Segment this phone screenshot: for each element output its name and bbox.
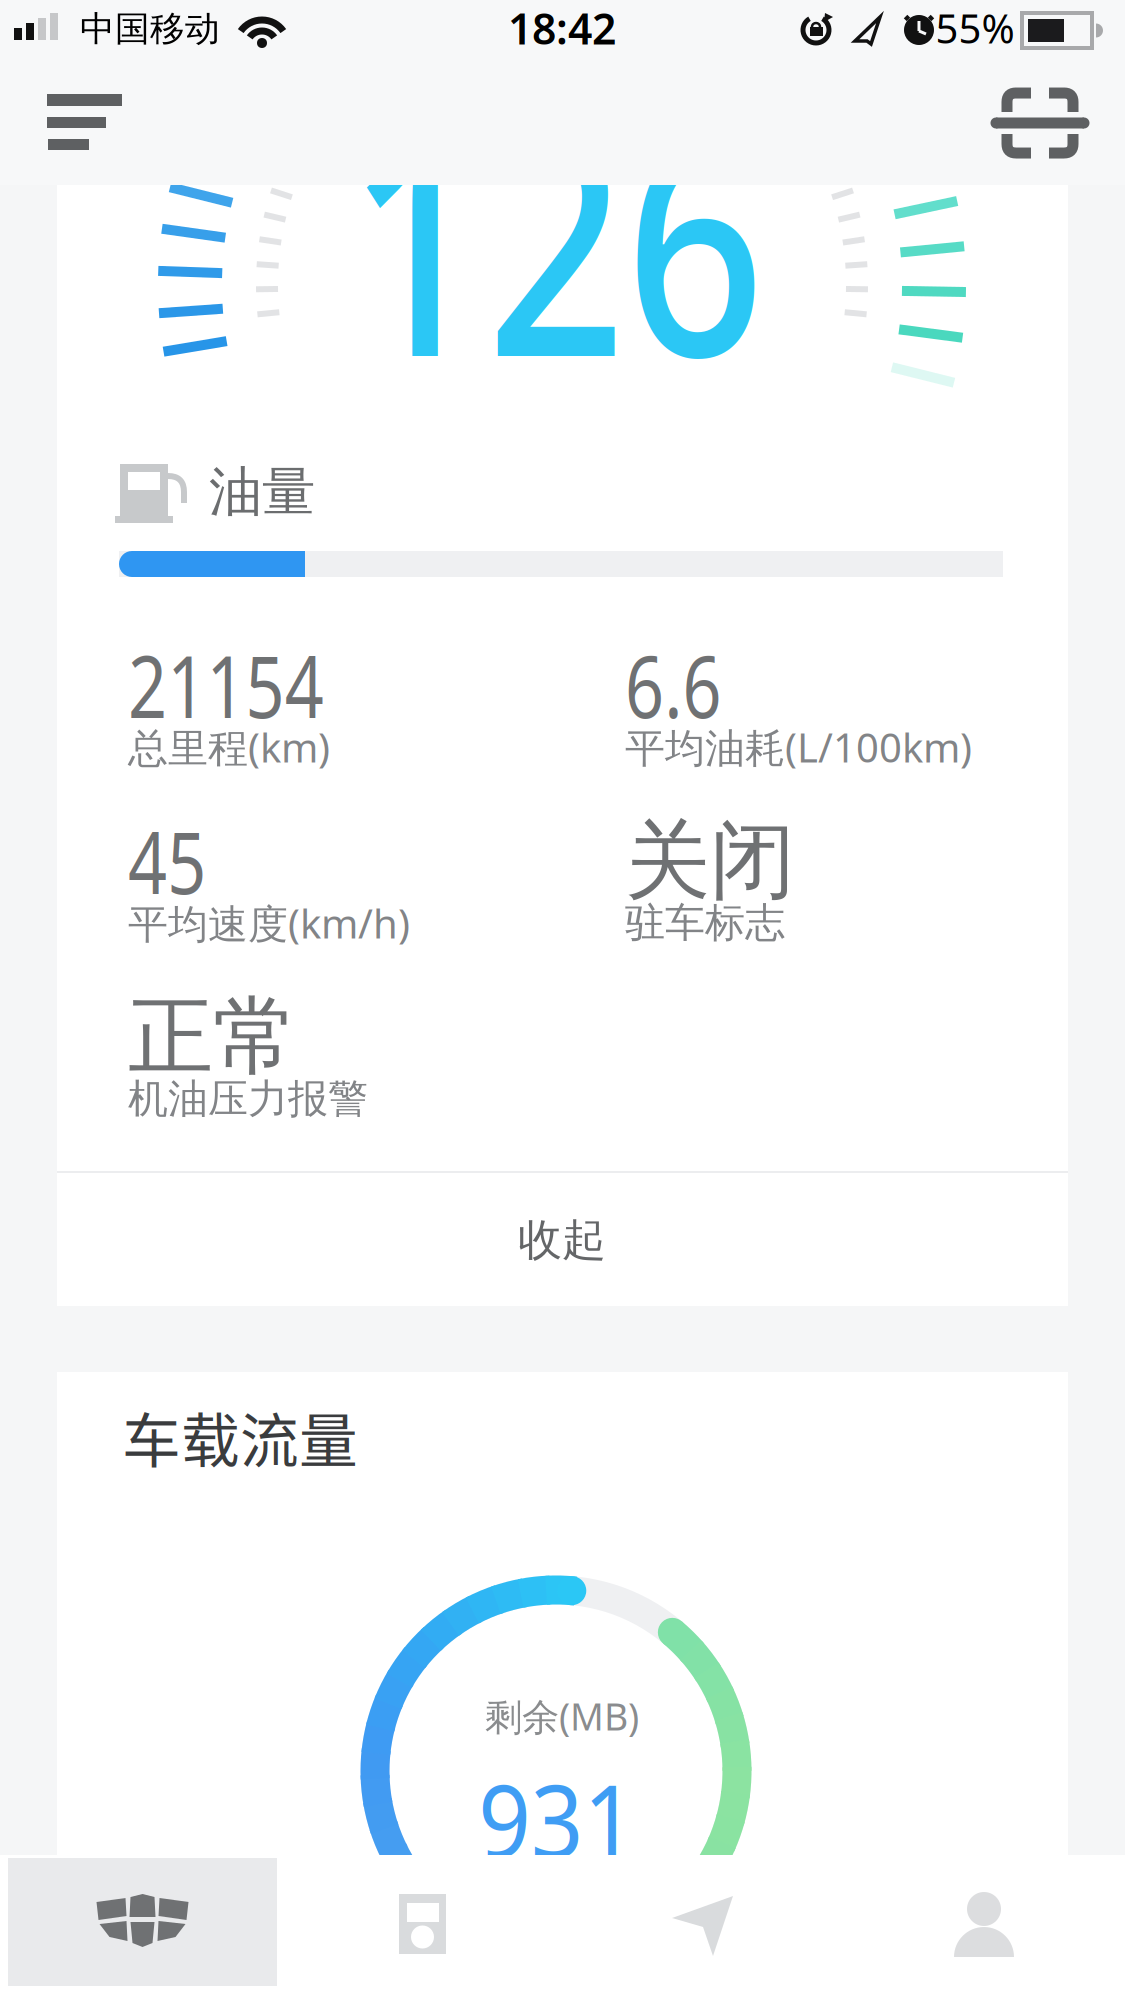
- staticText: 平均速度(km/h): [128, 896, 410, 949]
- staticText: 正常: [128, 985, 298, 1089]
- staticText: 931: [471, 1753, 642, 1885]
- staticText: 油量: [209, 459, 315, 525]
- staticText: 机油压力报警: [128, 1074, 368, 1123]
- staticText: 55%: [935, 1, 1014, 54]
- staticText: 45: [128, 804, 226, 918]
- staticText: 车载流量: [122, 1394, 358, 1479]
- staticText: 中国移动: [80, 8, 220, 50]
- staticText: 驻车标志: [625, 898, 785, 947]
- staticText: 平均油耗(L/100km): [625, 720, 972, 773]
- staticText: 18:42: [508, 0, 616, 56]
- staticText: 关闭: [625, 809, 795, 913]
- staticText: 收起: [518, 1213, 606, 1267]
- staticText: 126: [295, 36, 817, 440]
- staticText: 剩余(MB): [485, 1691, 639, 1741]
- staticText: 总里程(km): [128, 720, 330, 773]
- staticText: 6.6: [625, 628, 746, 742]
- staticText: 21154: [128, 628, 373, 742]
